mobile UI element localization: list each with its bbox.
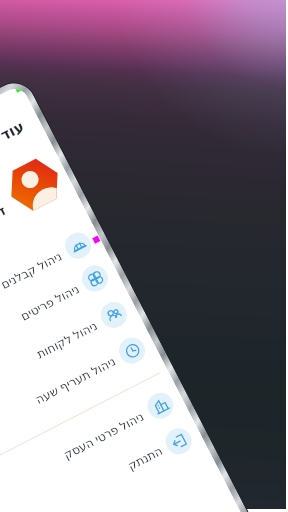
staticText: התנתק: [126, 444, 165, 473]
button[interactable]: ניהול קבלנים: [0, 218, 107, 361]
button[interactable]: ניהול פרטי העסק: [0, 378, 189, 512]
staticText: ניהול לקוחות: [34, 316, 100, 361]
staticText: דוד לוי: [0, 201, 9, 235]
button[interactable]: ניהול לקוחות: [0, 287, 142, 431]
staticText: ניהול תעריף שעה: [32, 352, 119, 407]
staticText: ניהול פריטים: [17, 280, 82, 324]
button[interactable]: עוד: [0, 106, 37, 173]
button[interactable]: ניהול פריטים: [0, 251, 124, 394]
button[interactable]: שלום,: [0, 143, 77, 304]
staticText: עוד: [0, 117, 27, 144]
button[interactable]: ניהול תעריף שעה: [0, 323, 161, 466]
staticText: ניהול קבלנים: [0, 247, 65, 292]
staticText: ניהול פרטי העסק: [61, 407, 147, 462]
button[interactable]: התנתק: [0, 413, 207, 512]
